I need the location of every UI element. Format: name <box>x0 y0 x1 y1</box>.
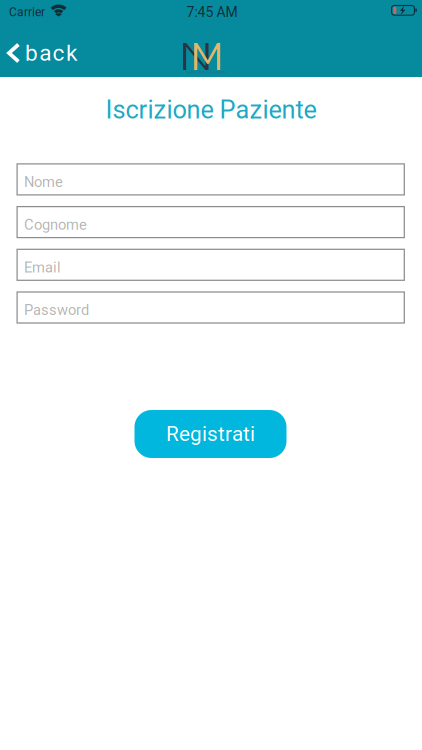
staticText: Email <box>24 259 61 276</box>
staticText: back <box>25 40 77 66</box>
staticText: Password <box>24 301 89 319</box>
staticText: Studio Medico Associato <box>186 70 226 74</box>
button[interactable]: Registrati <box>134 410 286 458</box>
staticText: Registrati <box>166 422 255 446</box>
staticText: Iscrizione Paziente <box>105 95 316 125</box>
staticText: Cognome <box>24 216 87 233</box>
staticText: Carrier <box>9 5 45 19</box>
button[interactable]: back <box>7 38 99 68</box>
staticText: 7:45 AM <box>186 4 237 20</box>
staticText: Nome <box>24 173 63 191</box>
